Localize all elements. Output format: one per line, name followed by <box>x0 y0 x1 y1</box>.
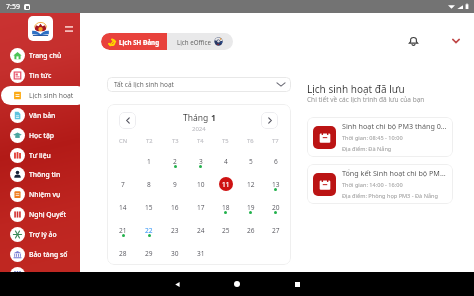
staticText: T5 <box>222 137 229 145</box>
staticText: 29 <box>145 249 153 258</box>
staticText: 2 <box>173 157 177 166</box>
button[interactable]: Học tập <box>0 126 100 145</box>
staticText: 10 <box>197 180 205 189</box>
button[interactable]: Notifications <box>404 31 423 50</box>
staticText: 14 <box>119 203 127 212</box>
staticText: 3 <box>199 157 203 166</box>
staticText: 30 <box>171 249 179 258</box>
staticText: 19 <box>247 203 255 212</box>
button[interactable]: Khác <box>0 265 100 284</box>
button[interactable]: Thông tin <box>0 165 100 184</box>
staticText: T4 <box>197 137 204 145</box>
button[interactable]: Home <box>230 277 244 291</box>
staticText: 21 <box>119 226 127 235</box>
staticText: Trang chủ <box>29 51 62 60</box>
staticText: Tổng kết Sinh hoạt chi bộ PM3 t... <box>342 168 448 178</box>
button[interactable]: Back <box>170 277 184 291</box>
staticText: Thời gian: 08:45 - 10:00 <box>342 134 403 142</box>
staticText: Tất cả lịch sinh hoạt <box>114 80 174 89</box>
button[interactable]: Expand account <box>447 32 465 50</box>
button[interactable]: Trợ lý ảo <box>0 225 100 244</box>
staticText: T7 <box>272 137 279 145</box>
staticText: Khác <box>29 270 45 279</box>
staticText: Lịch sinh hoạt <box>29 91 74 100</box>
staticText: T3 <box>172 137 179 145</box>
staticText: Tư liệu <box>29 151 51 160</box>
staticText: Thông tin <box>29 170 61 179</box>
staticText: 8 <box>147 180 151 189</box>
staticText: 7:59 <box>6 2 20 12</box>
staticText: 25 <box>222 226 230 235</box>
staticText: Sinh hoạt chi bộ PM3 tháng 01/... <box>342 121 448 131</box>
staticText: 24 <box>197 226 205 235</box>
button[interactable]: Recents <box>290 277 304 291</box>
staticText: Tin tức <box>29 71 52 80</box>
staticText: T2 <box>146 137 153 145</box>
staticText: Tháng <box>183 112 211 124</box>
staticText: 27 <box>272 226 280 235</box>
staticText: 4 <box>224 157 228 166</box>
staticText: CN <box>119 137 128 145</box>
staticText: 20 <box>272 203 280 212</box>
staticText: 26 <box>247 226 255 235</box>
button[interactable]: Văn bản <box>0 106 100 125</box>
staticText: Nghị Quyết <box>29 210 67 219</box>
staticText: Bảo tàng số <box>29 250 68 259</box>
button[interactable]: Tất cả lịch sinh hoạt <box>107 77 291 92</box>
staticText: 15 <box>145 203 153 212</box>
staticText: Lịch SH Đảng <box>119 38 160 46</box>
staticText: 9 <box>173 180 177 189</box>
button[interactable]: Nghị Quyết <box>0 205 100 224</box>
staticText: Địa điểm: Đà Nẵng <box>342 145 392 153</box>
button[interactable]: Next month <box>261 112 278 129</box>
staticText: Lịch eOffice <box>177 38 211 46</box>
staticText: 31 <box>197 249 205 258</box>
button[interactable]: Tư liệu <box>0 146 100 165</box>
button[interactable]: Sinh hoạt chi bộ PM3 tháng 01/... <box>307 117 453 157</box>
staticText: 1 <box>211 112 216 124</box>
staticText: 22 <box>145 226 153 235</box>
staticText: Lịch sinh hoạt đã lưu <box>307 82 405 96</box>
button[interactable]: Lịch sinh hoạt <box>0 86 100 105</box>
staticText: Chi tiết về các lịch trình đã lưu của bạ… <box>307 95 425 104</box>
staticText: 28 <box>119 249 127 258</box>
staticText: Thời gian: 14:00 - 16:00 <box>342 181 403 189</box>
button[interactable]: Nhiệm vụ <box>0 185 100 204</box>
staticText: Địa điểm: Phòng họp PM3 - Đà Nẵng <box>342 192 438 200</box>
button[interactable]: Lịch eOffice <box>167 33 233 50</box>
staticText: 17 <box>197 203 205 212</box>
staticText: Trợ lý ảo <box>29 230 57 239</box>
staticText: Học tập <box>29 131 55 140</box>
staticText: 2024 <box>192 125 206 133</box>
staticText: 7 <box>121 180 125 189</box>
button[interactable]: Menu <box>62 22 75 35</box>
staticText: 5 <box>249 157 253 166</box>
staticText: 18 <box>222 203 230 212</box>
button[interactable]: Tin tức <box>0 66 100 85</box>
staticText: Văn bản <box>29 111 56 120</box>
staticText: 11 <box>222 180 230 189</box>
staticText: Nhiệm vụ <box>29 190 61 199</box>
button[interactable]: Trang chủ <box>0 46 100 65</box>
staticText: 13 <box>272 180 280 189</box>
staticText: 16 <box>171 203 179 212</box>
button[interactable]: Lịch SH Đảng <box>101 33 167 50</box>
button[interactable]: Previous month <box>119 112 136 129</box>
staticText: T6 <box>247 137 254 145</box>
button[interactable]: Tổng kết Sinh hoạt chi bộ PM3 t... <box>307 164 453 204</box>
staticText: 23 <box>171 226 179 235</box>
staticText: 12 <box>247 180 255 189</box>
button[interactable]: Bảo tàng số <box>0 245 100 264</box>
staticText: 6 <box>274 157 278 166</box>
staticText: 1 <box>147 157 151 166</box>
